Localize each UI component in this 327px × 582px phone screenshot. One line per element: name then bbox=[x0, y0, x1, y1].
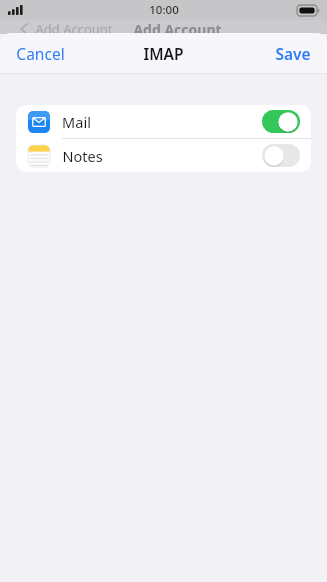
button[interactable]: Notes bbox=[16, 139, 311, 172]
staticText: Mail bbox=[62, 112, 91, 132]
staticText: 10:00 bbox=[149, 2, 179, 18]
button[interactable]: Mail bbox=[16, 105, 311, 138]
button[interactable]: On bbox=[262, 110, 300, 133]
staticText: Add Account bbox=[35, 20, 113, 38]
button[interactable]: Off bbox=[262, 144, 300, 167]
staticText: Notes bbox=[62, 146, 103, 166]
button[interactable]: Save bbox=[267, 38, 319, 69]
staticText: Save bbox=[275, 43, 311, 64]
staticText: Add Account bbox=[133, 20, 222, 38]
button[interactable]: Cancel bbox=[8, 38, 73, 69]
staticText: Cancel bbox=[16, 43, 65, 64]
staticText: IMAP bbox=[143, 43, 184, 64]
